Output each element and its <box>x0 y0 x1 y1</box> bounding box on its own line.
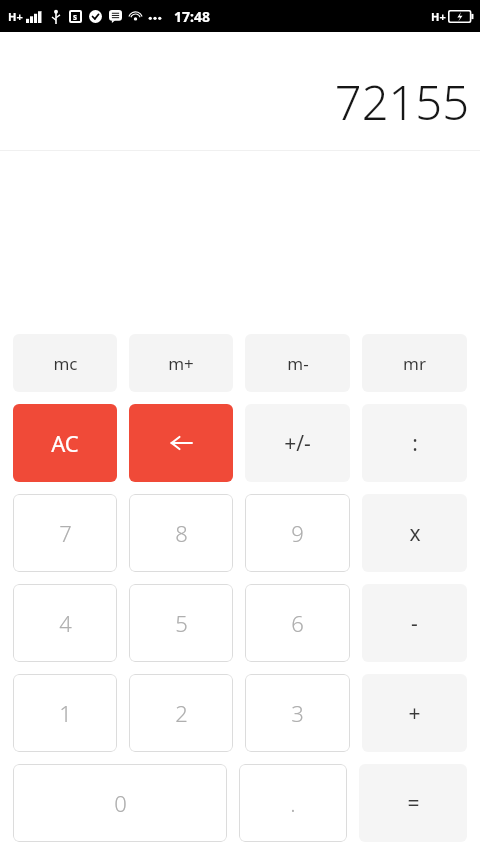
button[interactable]: 7 <box>13 494 117 572</box>
staticText: s <box>73 11 78 22</box>
staticText: x <box>409 519 421 548</box>
staticText: 3 <box>291 698 304 728</box>
staticText: AC <box>51 428 79 458</box>
button[interactable]: 3 <box>245 674 350 752</box>
button[interactable]: + <box>362 674 467 752</box>
button[interactable]: 0 <box>13 764 227 842</box>
staticText: 6 <box>291 608 304 638</box>
staticText: m+ <box>168 352 194 375</box>
staticText: 7 <box>59 518 72 548</box>
button[interactable]: 1 <box>13 674 117 752</box>
staticText: m- <box>287 352 309 375</box>
button[interactable]: 9 <box>245 494 350 572</box>
staticText: 72155 <box>334 70 469 134</box>
staticText: H+ <box>431 9 446 24</box>
button[interactable]: : <box>362 404 467 482</box>
staticText: + <box>408 699 421 728</box>
staticText: mr <box>403 352 426 375</box>
staticText: mc <box>53 352 78 375</box>
button[interactable]: 2 <box>129 674 233 752</box>
button[interactable]: = <box>359 764 467 842</box>
button[interactable]: mr <box>362 334 467 392</box>
staticText: 2 <box>175 698 188 728</box>
staticText: - <box>411 609 418 638</box>
button[interactable]: m+ <box>129 334 233 392</box>
staticText: 0 <box>114 788 127 818</box>
staticText: 5 <box>175 608 188 638</box>
staticText: . <box>290 788 296 818</box>
staticText: 8 <box>175 518 188 548</box>
button[interactable]: m- <box>245 334 350 392</box>
button[interactable]: 5 <box>129 584 233 662</box>
staticText: : <box>412 429 418 458</box>
button[interactable]: 4 <box>13 584 117 662</box>
staticText: 1 <box>59 698 72 728</box>
button[interactable]: . <box>239 764 347 842</box>
button[interactable]: 8 <box>129 494 233 572</box>
staticText: H+ <box>8 9 23 24</box>
button[interactable]: 6 <box>245 584 350 662</box>
button[interactable]: AC <box>13 404 117 482</box>
staticText: +/- <box>284 429 311 458</box>
button[interactable]: mc <box>13 334 117 392</box>
staticText: 4 <box>59 608 72 638</box>
button[interactable]: Backspace <box>129 404 233 482</box>
staticText: 9 <box>291 518 304 548</box>
button[interactable]: x <box>362 494 467 572</box>
button[interactable]: - <box>362 584 467 662</box>
staticText: = <box>407 789 420 818</box>
staticText: 17:48 <box>174 7 210 26</box>
button[interactable]: +/- <box>245 404 350 482</box>
